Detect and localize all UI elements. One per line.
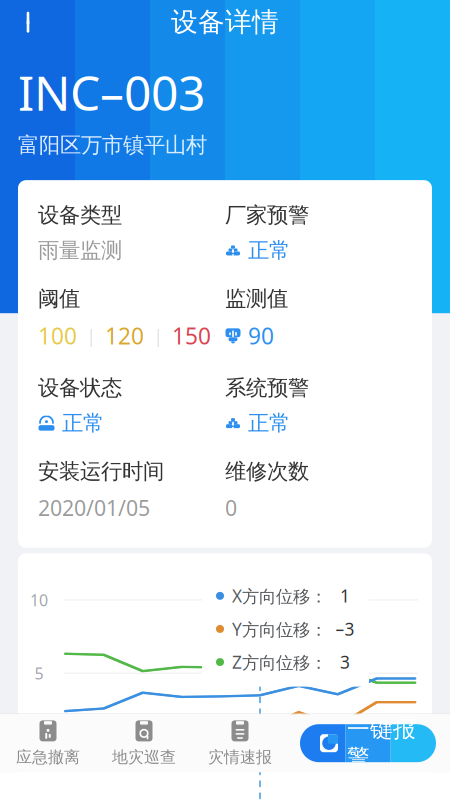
button[interactable]: 返回	[8, 0, 52, 44]
staticText: 3	[340, 651, 350, 674]
staticText: 灾情速报	[208, 747, 272, 767]
staticText: 厂家预警	[225, 202, 309, 228]
staticText: 一键报警	[347, 715, 416, 771]
staticText: 系统预警	[225, 375, 309, 401]
staticText: 维修次数	[225, 458, 309, 484]
staticText: 阈值	[38, 286, 80, 312]
staticText: 1	[340, 584, 350, 607]
staticText: 正常	[248, 410, 290, 436]
staticText: 监测值	[225, 286, 288, 312]
staticText: |	[86, 323, 96, 348]
staticText: 安装运行时间	[38, 458, 164, 484]
button[interactable]: 地灾巡查	[96, 714, 192, 772]
staticText: |	[153, 323, 163, 348]
staticText: 5	[34, 662, 43, 684]
staticText: 10	[30, 589, 48, 610]
staticText: 120	[105, 321, 144, 351]
staticText: 0	[34, 736, 43, 757]
staticText: Z方向位移：	[232, 650, 327, 674]
staticText: 0	[225, 493, 237, 522]
staticText: 2020/01/05	[38, 493, 150, 522]
staticText: 应急撤离	[16, 747, 80, 767]
button[interactable]: 灾情速报	[192, 714, 288, 772]
staticText: 设备类型	[38, 202, 122, 228]
staticText: INC–003	[18, 60, 205, 124]
staticText: 雨量监测	[38, 237, 122, 264]
staticText: X方向位移：	[232, 584, 327, 607]
staticText: 90	[248, 321, 274, 351]
staticText: 富阳区万市镇平山村	[18, 132, 207, 158]
staticText: 设备状态	[38, 375, 122, 401]
staticText: 地灾巡查	[112, 747, 176, 767]
staticText: 150	[172, 321, 211, 351]
staticText: Y方向位移：	[232, 617, 327, 640]
staticText: 设备详情	[171, 6, 279, 39]
staticText: 正常	[248, 237, 290, 264]
button[interactable]: 应急撤离	[0, 714, 96, 772]
staticText: 正常	[62, 410, 104, 436]
staticText: –3	[335, 617, 354, 640]
button[interactable]: 一键报警	[300, 724, 436, 762]
staticText: 100	[38, 321, 77, 351]
